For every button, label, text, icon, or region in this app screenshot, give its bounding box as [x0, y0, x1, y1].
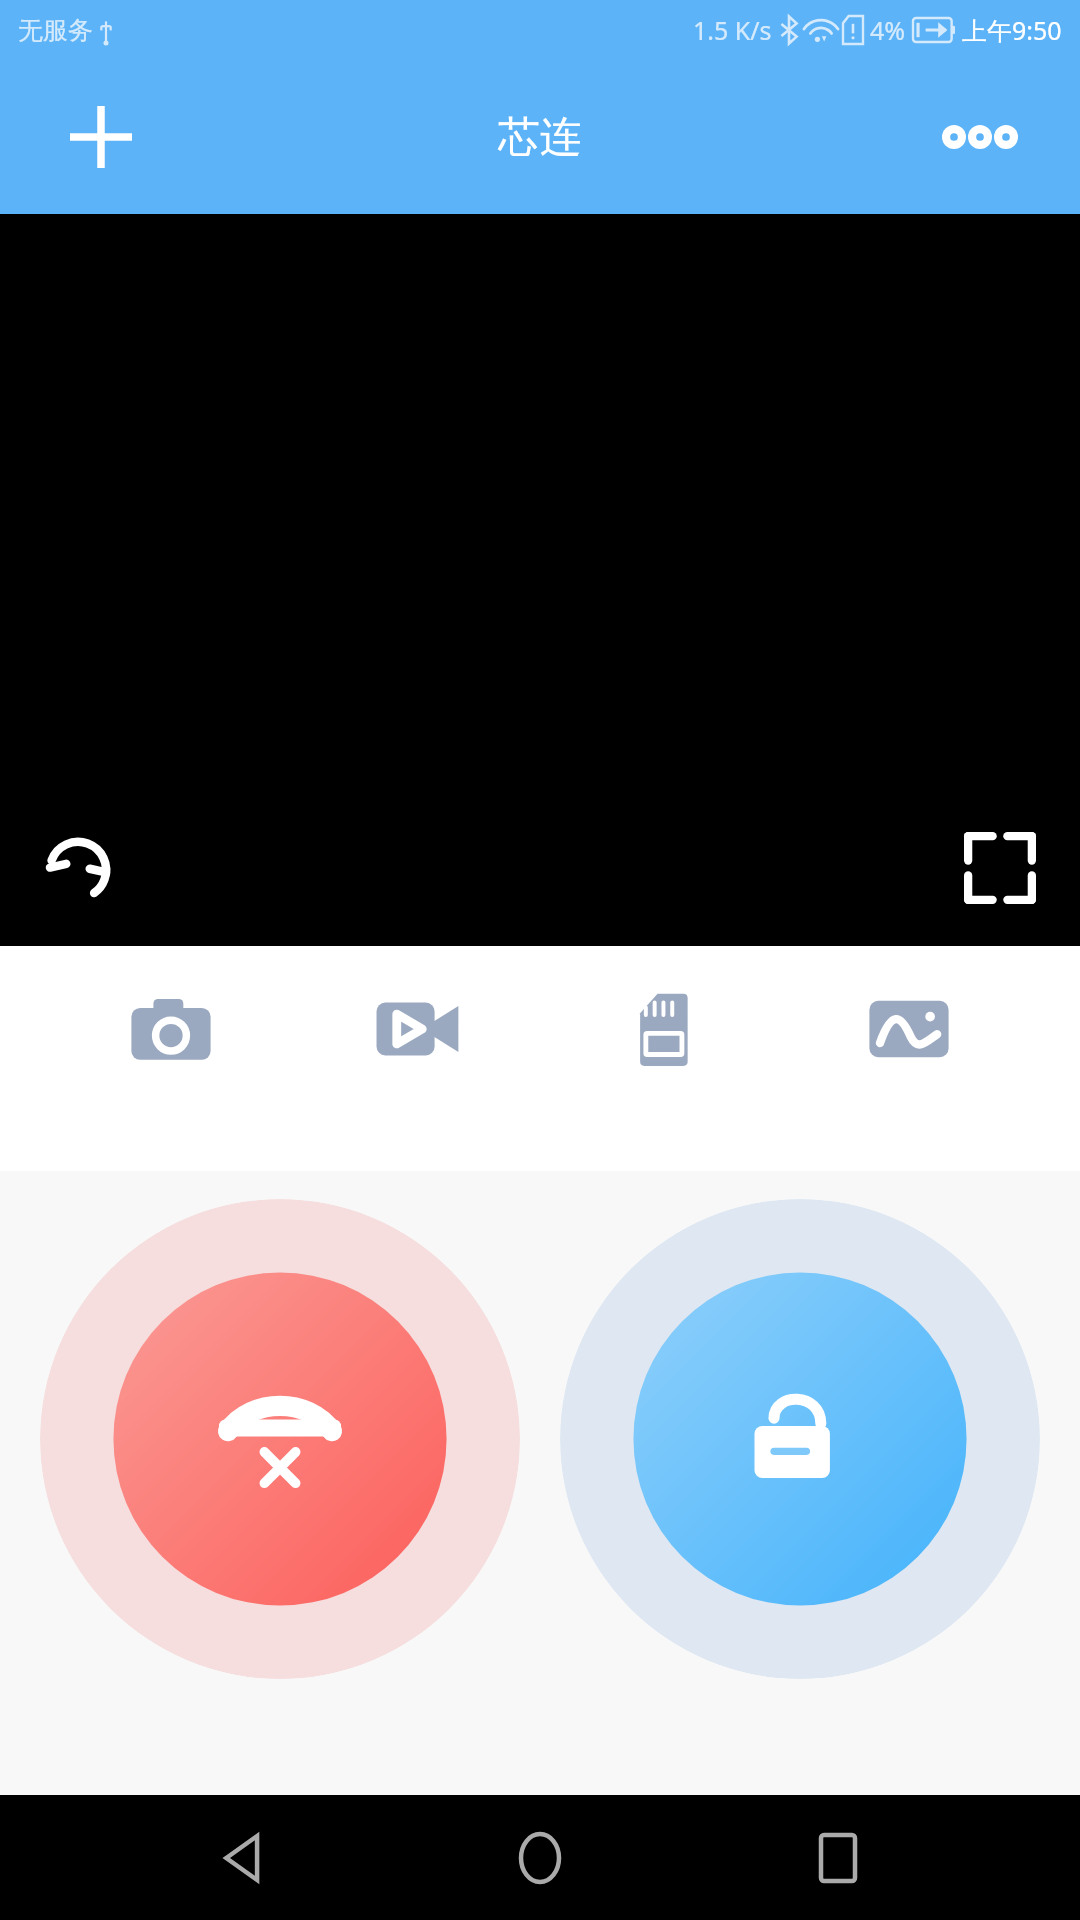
- button[interactable]: Hang up: [40, 1199, 520, 1679]
- button[interactable]: Gallery: [834, 964, 984, 1094]
- button[interactable]: Record video: [342, 964, 492, 1094]
- button[interactable]: Fullscreen: [954, 822, 1046, 914]
- staticText: 上午9:50: [962, 13, 1062, 47]
- button[interactable]: SD card: [588, 964, 738, 1094]
- button[interactable]: Unlock: [560, 1199, 1040, 1679]
- button[interactable]: Switch camera: [32, 824, 124, 916]
- staticText: 4%: [870, 13, 906, 47]
- button[interactable]: Recents: [783, 1803, 893, 1913]
- button[interactable]: Add: [60, 96, 142, 178]
- button[interactable]: Back: [188, 1803, 298, 1913]
- button[interactable]: Take photo: [96, 964, 246, 1094]
- staticText: 芯连: [498, 111, 582, 164]
- staticText: 1.5 K/s: [693, 13, 772, 47]
- button[interactable]: Home: [485, 1803, 595, 1913]
- staticText: 无服务: [18, 15, 93, 46]
- button[interactable]: More options: [935, 92, 1025, 182]
